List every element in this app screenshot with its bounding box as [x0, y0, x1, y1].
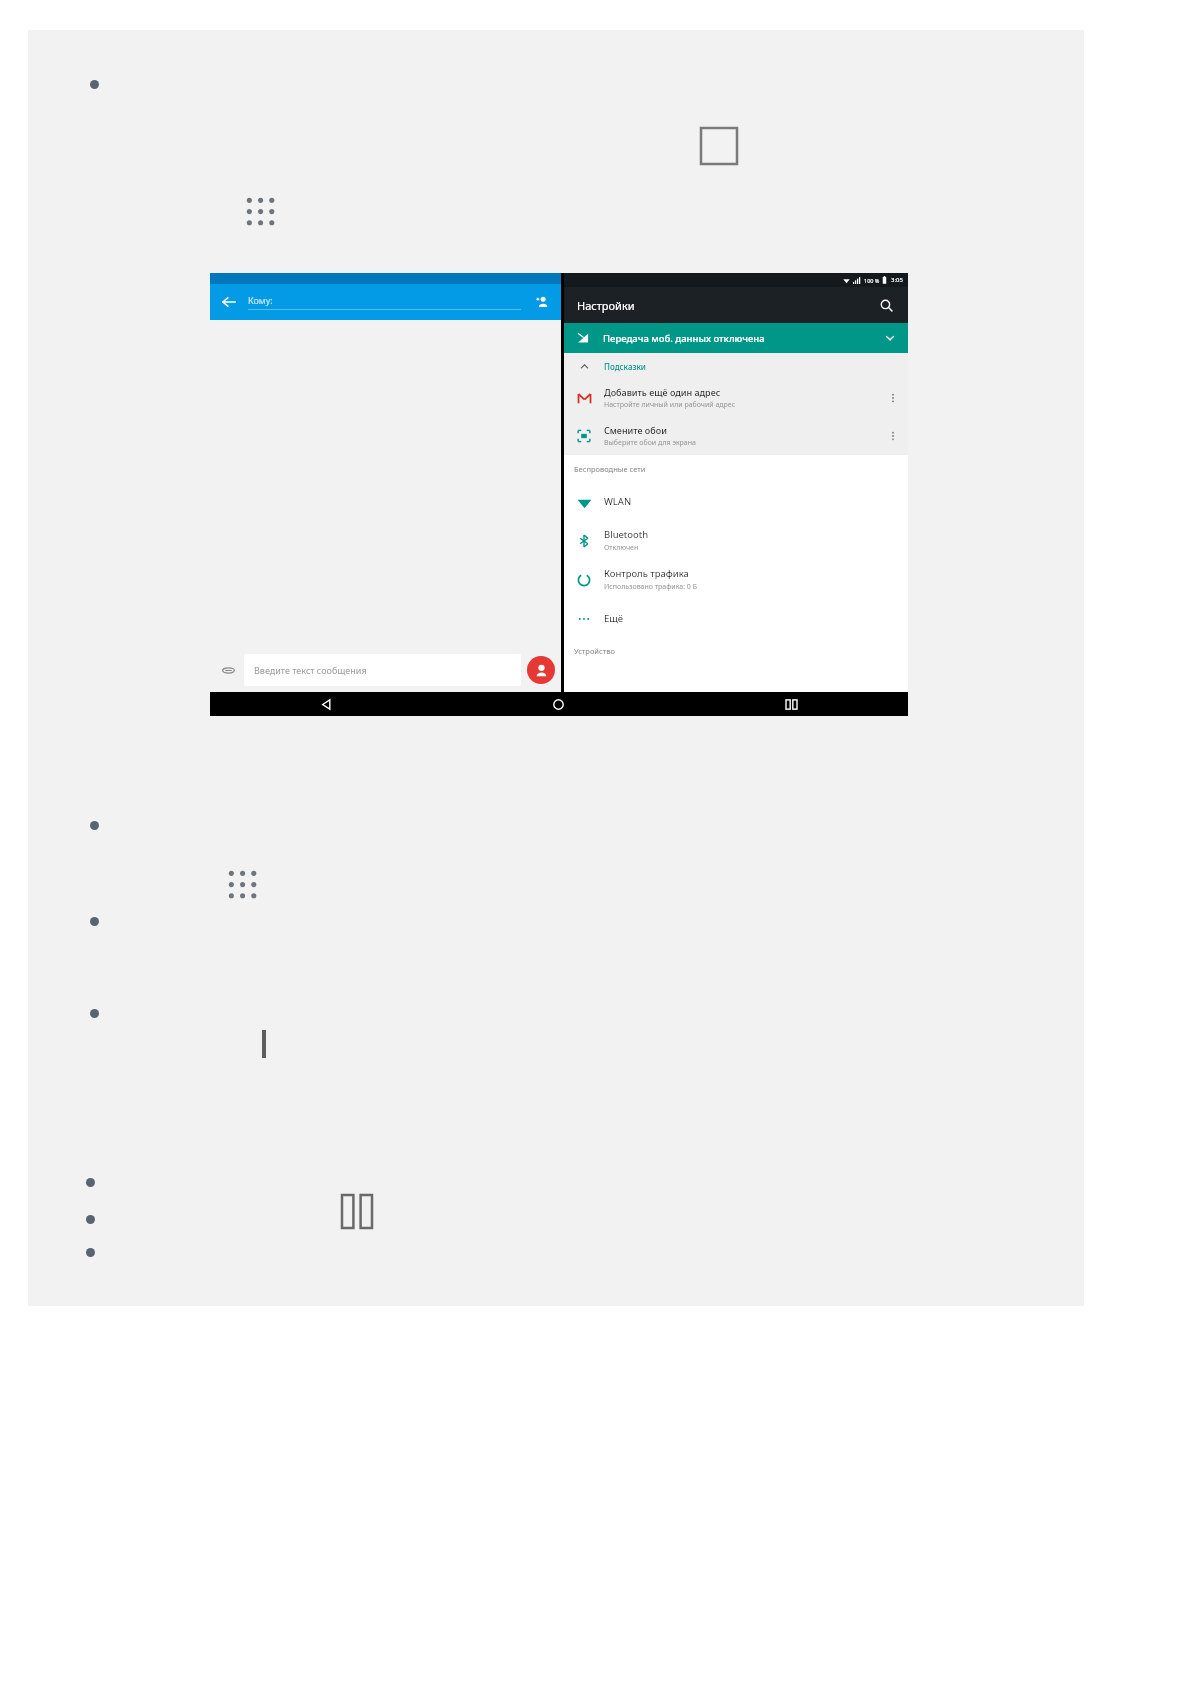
button[interactable]: Back — [210, 692, 442, 716]
staticText: Bluetooth — [604, 528, 649, 541]
staticText: Контроль трафика — [604, 567, 689, 580]
button[interactable]: Контроль трафика — [564, 560, 908, 599]
button[interactable]: Bluetooth — [564, 521, 908, 560]
staticText: Выберите обои для экрана — [604, 438, 696, 448]
button[interactable]: Home — [442, 692, 675, 716]
staticText: Смените обои — [604, 424, 667, 436]
staticText: Беспроводные сети — [574, 464, 646, 474]
staticText: Настройки — [577, 298, 635, 313]
button[interactable]: Send to contact — [527, 656, 555, 684]
button[interactable]: Recent apps — [675, 692, 908, 716]
button[interactable]: Передача моб. данных отключена — [564, 323, 908, 353]
staticText: Настройте личный или рабочий адрес — [604, 400, 736, 410]
staticText: WLAN — [604, 495, 632, 508]
staticText: Отключен — [604, 543, 639, 553]
staticText: 3:05 — [891, 276, 903, 284]
button[interactable]: More options — [882, 387, 904, 409]
staticText: Введите текст сообщения — [254, 664, 367, 676]
button[interactable]: Back — [210, 284, 561, 320]
staticText: Ещё — [604, 612, 624, 625]
button[interactable]: Add recipient — [531, 291, 553, 313]
button[interactable]: Ещё — [564, 599, 908, 638]
staticText: Устройство — [574, 646, 615, 656]
staticText: Передача моб. данных отключена — [603, 332, 765, 345]
button[interactable]: Expand — [880, 328, 900, 348]
button[interactable]: Search — [874, 293, 898, 317]
button[interactable]: Back — [218, 291, 240, 313]
staticText: Подсказки — [604, 361, 646, 372]
button[interactable]: More options — [882, 425, 904, 447]
button[interactable]: WLAN — [564, 482, 908, 521]
button[interactable]: Attach — [218, 660, 238, 680]
staticText: 100 % — [864, 277, 880, 284]
staticText: Добавить ещё один адрес — [604, 386, 721, 398]
button[interactable]: Смените обои — [564, 417, 908, 455]
button[interactable]: Добавить ещё один адрес — [564, 379, 908, 417]
button[interactable]: Подсказки — [564, 353, 908, 379]
staticText: Использовано трафика: 0 Б — [604, 582, 697, 592]
staticText: Кому: — [248, 294, 273, 306]
button[interactable]: Введите текст сообщения — [244, 654, 521, 686]
